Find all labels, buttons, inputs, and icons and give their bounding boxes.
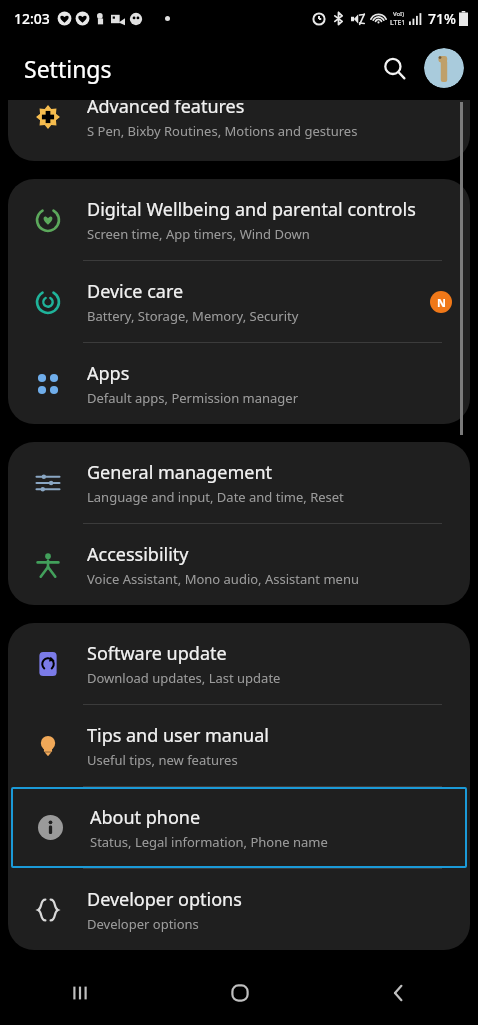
button[interactable]: Account <box>424 48 464 88</box>
staticText: General management <box>87 460 273 485</box>
button[interactable]: Digital Wellbeing and parental controls <box>8 179 470 260</box>
button[interactable]: Advanced features <box>8 100 470 161</box>
button[interactable]: Developer options <box>8 869 470 950</box>
staticText: Digital Wellbeing and parental controls <box>87 197 416 222</box>
staticText: Software update <box>87 641 227 666</box>
button[interactable]: Software update <box>8 623 470 704</box>
staticText: Screen time, App timers, Wind Down <box>87 225 310 243</box>
button[interactable]: General management <box>8 442 470 523</box>
staticText: 12:03 <box>14 9 50 28</box>
staticText: Voice Assistant, Mono audio, Assistant m… <box>87 570 359 588</box>
staticText: 71% <box>428 9 456 28</box>
staticText: Developer options <box>87 915 199 933</box>
button[interactable]: Search <box>370 44 418 92</box>
staticText: LTE1 <box>390 18 406 28</box>
staticText: Advanced features <box>87 100 245 119</box>
staticText: Apps <box>87 361 130 386</box>
staticText: Download updates, Last update <box>87 669 281 687</box>
button[interactable]: Apps <box>8 343 470 424</box>
button[interactable]: Device care <box>8 261 470 342</box>
staticText: Tips and user manual <box>87 723 269 748</box>
staticText: About phone <box>90 805 201 830</box>
staticText: Default apps, Permission manager <box>87 389 299 407</box>
button[interactable]: Tips and user manual <box>8 705 470 786</box>
staticText: N <box>437 295 446 310</box>
staticText: Language and input, Date and time, Reset <box>87 488 344 506</box>
staticText: Accessibility <box>87 542 189 567</box>
staticText: Useful tips, new features <box>87 751 238 769</box>
button[interactable]: Accessibility <box>8 524 470 605</box>
button[interactable]: Recents <box>0 961 160 1025</box>
staticText: Battery, Storage, Memory, Security <box>87 307 299 325</box>
staticText: S Pen, Bixby Routines, Motions and gestu… <box>87 122 358 140</box>
button[interactable]: About phone <box>8 787 470 868</box>
staticText: Status, Legal information, Phone name <box>90 833 328 851</box>
staticText: Settings <box>24 53 112 84</box>
staticText: VoI) <box>393 10 404 18</box>
staticText: Device care <box>87 279 184 304</box>
staticText: Developer options <box>87 887 242 912</box>
button[interactable]: Home <box>160 961 319 1025</box>
button[interactable]: Back <box>319 961 478 1025</box>
